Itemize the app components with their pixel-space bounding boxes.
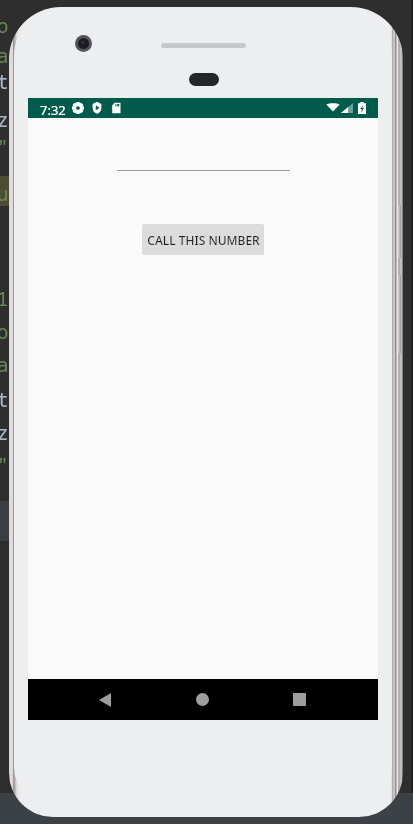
staticText: z [0,107,9,133]
staticText: o [0,13,9,39]
staticText: " [0,134,9,160]
staticText: t [0,387,9,413]
staticText: CALL THIS NUMBER [147,232,260,248]
staticText: u [0,181,9,207]
staticText: 1 [0,286,9,312]
staticText: " [0,452,9,478]
staticText: a [0,352,9,378]
button[interactable]: CALL THIS NUMBER [142,224,264,255]
staticText: 7:32 [40,101,66,119]
button[interactable]: Home [181,679,223,720]
staticText: o [0,319,9,345]
button[interactable]: Recent apps [278,679,320,720]
button[interactable]: Back [84,679,126,720]
staticText: t [0,69,9,95]
staticText: z [0,420,9,446]
staticText: a [0,43,9,69]
